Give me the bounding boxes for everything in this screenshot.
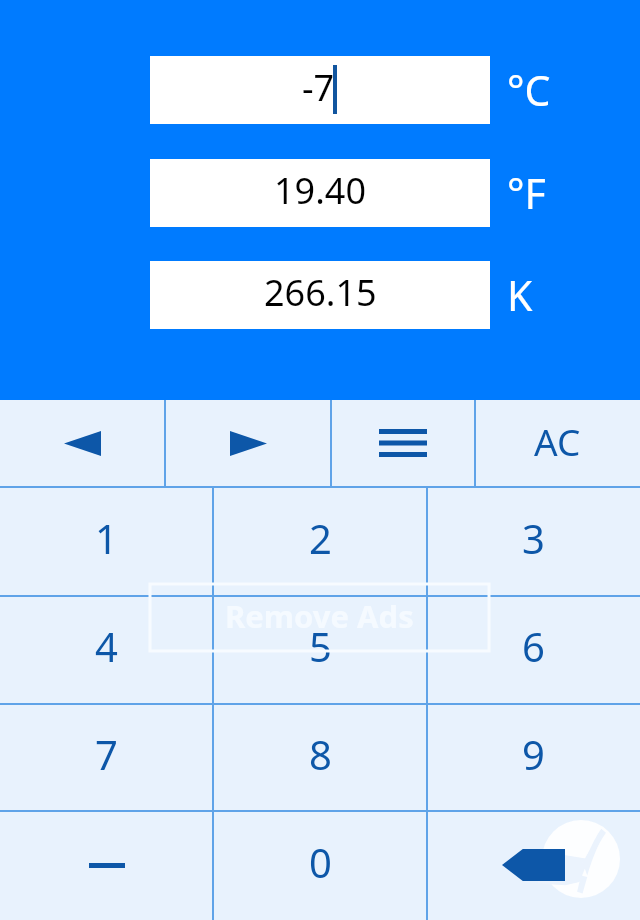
staticText: K xyxy=(507,267,533,323)
button[interactable]: 19.40 xyxy=(150,159,490,227)
button[interactable]: 266.15 xyxy=(150,261,490,329)
button[interactable]: 4 xyxy=(0,595,213,703)
button[interactable]: 2 xyxy=(213,486,427,595)
button[interactable]: Previous xyxy=(0,400,165,486)
button[interactable]: Backspace xyxy=(427,810,640,920)
staticText: -7 xyxy=(302,63,335,112)
staticText: 19.40 xyxy=(274,166,367,215)
staticText: Remove Ads xyxy=(225,595,414,637)
staticText: 3 xyxy=(522,511,545,565)
staticText: °F xyxy=(507,165,546,221)
button[interactable]: 0 xyxy=(213,810,427,920)
button[interactable]: Remove Ads xyxy=(150,584,489,651)
staticText: 5 xyxy=(309,619,332,673)
button[interactable]: 7 xyxy=(0,703,213,810)
staticText: 1 xyxy=(95,511,118,565)
button[interactable]: -7 xyxy=(150,56,490,124)
staticText: 8 xyxy=(309,727,332,781)
button[interactable]: Next xyxy=(165,400,331,486)
staticText: 9 xyxy=(522,727,545,781)
staticText: 7 xyxy=(95,727,118,781)
staticText: 266.15 xyxy=(264,268,377,317)
button[interactable]: 6 xyxy=(427,595,640,703)
button[interactable]: 1 xyxy=(0,486,213,595)
staticText: 4 xyxy=(95,619,118,673)
staticText: 0 xyxy=(309,835,332,889)
button[interactable]: Menu xyxy=(331,400,475,486)
staticText: 6 xyxy=(522,619,545,673)
staticText: AC xyxy=(534,416,581,466)
button[interactable]: Minus xyxy=(0,810,213,920)
button[interactable]: 8 xyxy=(213,703,427,810)
button[interactable]: AC xyxy=(475,400,640,486)
button[interactable]: 9 xyxy=(427,703,640,810)
button[interactable]: 5 xyxy=(213,595,427,703)
staticText: °C xyxy=(507,62,551,118)
button[interactable]: 3 xyxy=(427,486,640,595)
staticText: 2 xyxy=(309,511,332,565)
